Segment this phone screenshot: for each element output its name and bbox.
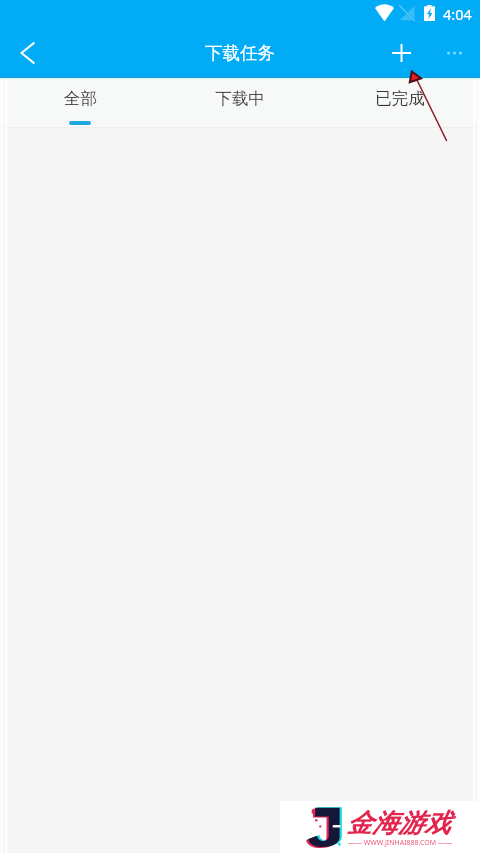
button[interactable]: 已完成 (320, 78, 480, 128)
staticText: 已完成 (375, 88, 425, 109)
staticText: 下载中 (215, 88, 265, 109)
button[interactable]: Add (377, 29, 425, 77)
staticText: 全部 (64, 88, 97, 109)
button[interactable]: 全部 (0, 78, 160, 128)
staticText: —— WWW.JINHAI888.COM —— (348, 838, 452, 848)
staticText: 金海游戏 (346, 807, 450, 840)
staticText: 下载任务 (205, 42, 275, 64)
button[interactable]: 下载中 (160, 78, 320, 128)
button[interactable]: Back (0, 28, 54, 78)
button[interactable]: More options (430, 29, 478, 77)
staticText: 4:04 (443, 4, 472, 24)
